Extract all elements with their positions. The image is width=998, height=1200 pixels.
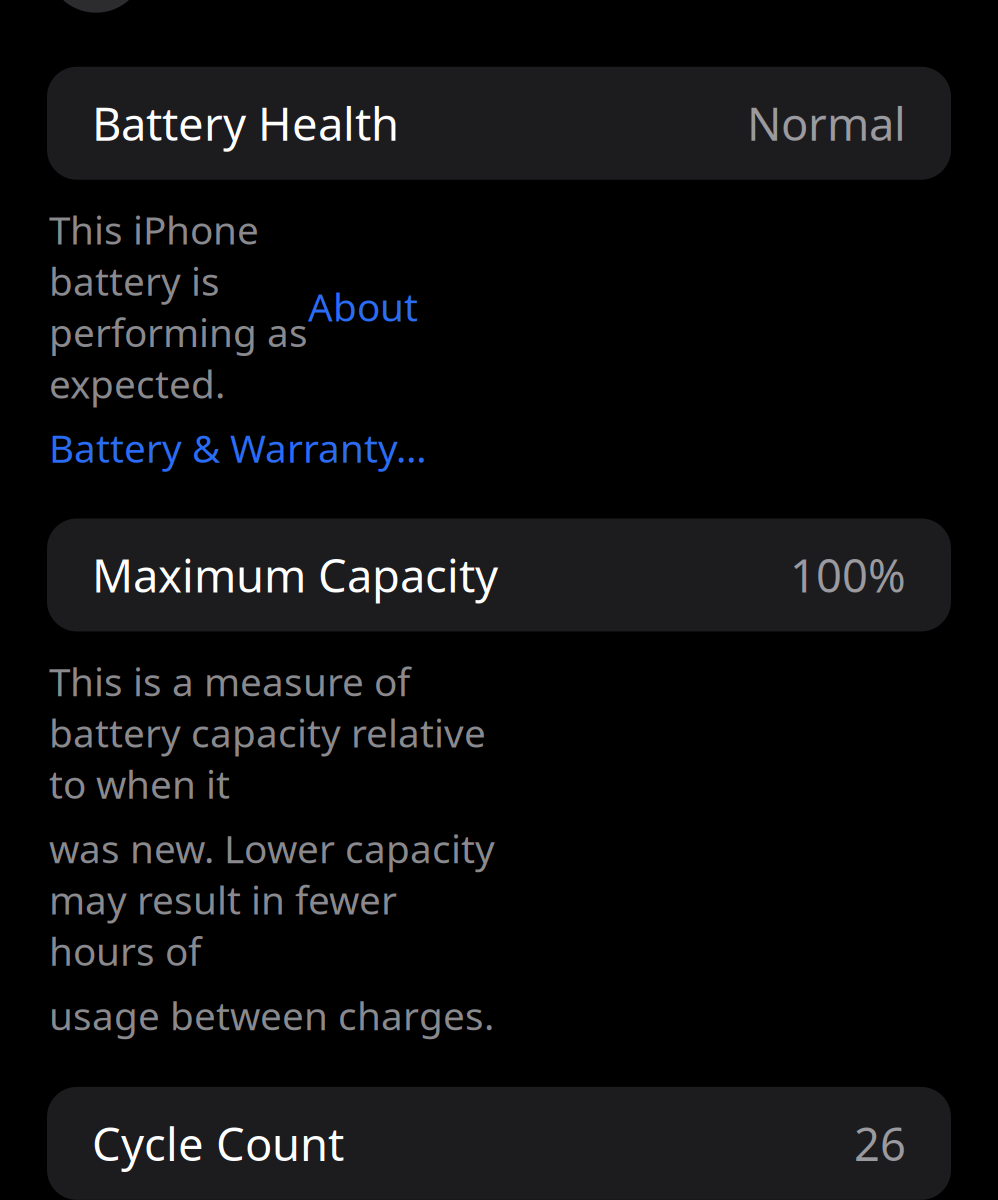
staticText: Normal bbox=[747, 93, 906, 153]
staticText: Battery Health bbox=[92, 93, 399, 153]
button[interactable]: Battery Health bbox=[47, 67, 951, 180]
staticText: was new. Lower capacity may result in fe… bbox=[49, 822, 495, 976]
button[interactable]: Maximum Capacity bbox=[47, 518, 951, 631]
staticText: usage between charges. bbox=[49, 989, 494, 1041]
staticText: Battery & Warranty… bbox=[49, 422, 427, 473]
staticText: This is a measure of battery capacity re… bbox=[49, 655, 486, 809]
staticText: About bbox=[308, 281, 418, 332]
staticText: Cycle Count bbox=[92, 1113, 344, 1173]
staticText: 100% bbox=[790, 545, 906, 605]
staticText: This iPhone battery is performing as exp… bbox=[49, 204, 308, 409]
staticText: ‹ bbox=[82, 0, 110, 17]
staticText: Maximum Capacity bbox=[92, 545, 498, 605]
button[interactable]: Cycle Count bbox=[47, 1087, 951, 1200]
staticText: 26 bbox=[854, 1113, 906, 1173]
button[interactable]: Back bbox=[47, 0, 145, 13]
